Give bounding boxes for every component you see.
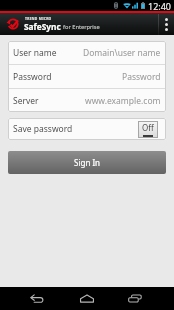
- staticText: Domain\user name: [83, 47, 161, 59]
- button[interactable]: Recent apps: [119, 287, 151, 310]
- staticText: Save password: [13, 123, 73, 135]
- button[interactable]: Save password: [8, 118, 166, 140]
- staticText: Password: [122, 71, 161, 83]
- staticText: SafeSync: [24, 21, 61, 32]
- staticText: Off: [142, 122, 154, 133]
- staticText: User name: [13, 47, 57, 59]
- button[interactable]: More options: [159, 13, 174, 35]
- button[interactable]: Back: [21, 287, 53, 310]
- staticText: www.example.com: [85, 95, 161, 107]
- staticText: Server: [13, 95, 39, 107]
- staticText: 12:40: [148, 0, 172, 11]
- staticText: TREND MICRO: [25, 16, 52, 21]
- button[interactable]: Sign In: [8, 151, 166, 174]
- button[interactable]: Home: [71, 287, 103, 310]
- staticText: for Enterprise: [63, 23, 100, 31]
- staticText: Password: [13, 71, 52, 83]
- staticText: Sign In: [74, 157, 101, 168]
